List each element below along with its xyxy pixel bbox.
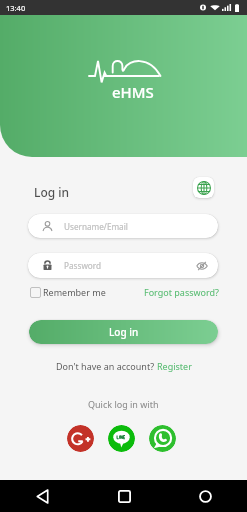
staticText: Log in (109, 325, 139, 339)
staticText: Quick log in with (88, 398, 159, 410)
button[interactable]: WhatsApp login (149, 425, 176, 452)
staticText: Log in (34, 184, 70, 200)
button[interactable]: Remember me (30, 286, 106, 298)
button[interactable]: Username/Email (28, 214, 218, 238)
button[interactable]: Password (28, 253, 218, 278)
button[interactable]: Register (157, 360, 192, 372)
staticText: Don't have an account? (56, 360, 157, 372)
button[interactable]: Language (193, 177, 214, 198)
button[interactable]: Google plus login (67, 425, 94, 452)
staticText: eHMS (112, 82, 154, 102)
button[interactable]: Home (110, 482, 138, 510)
button[interactable]: Log in (29, 320, 218, 344)
button[interactable]: LINE login (108, 425, 135, 452)
staticText: Username/Email (64, 221, 128, 232)
staticText: Password (64, 260, 102, 271)
staticText: 13:40 (6, 3, 26, 13)
button[interactable]: Back (28, 482, 56, 510)
staticText: Remember me (43, 286, 106, 298)
button[interactable]: Forgot password? (144, 286, 220, 298)
button[interactable]: Recents (191, 482, 219, 510)
